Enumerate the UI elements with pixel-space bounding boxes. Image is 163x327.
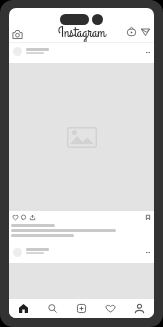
button[interactable]: Share <box>27 212 37 222</box>
button[interactable]: Profile <box>125 299 154 318</box>
button[interactable]: Save <box>143 212 153 222</box>
button[interactable]: Search <box>38 299 67 318</box>
staticText: Instagram <box>58 23 106 43</box>
button[interactable]: Create <box>67 299 96 318</box>
button[interactable]: Messages <box>138 24 152 38</box>
button[interactable]: More options <box>9 243 154 263</box>
button[interactable]: More options <box>9 43 154 63</box>
button[interactable]: Comment <box>18 212 28 222</box>
button[interactable]: More options <box>141 245 154 259</box>
button[interactable]: More options <box>141 45 154 59</box>
button[interactable]: Home <box>9 299 38 318</box>
button[interactable]: Activity <box>96 299 125 318</box>
button[interactable]: Like <box>10 212 20 222</box>
button[interactable]: IGTV <box>124 24 138 38</box>
button[interactable]: Camera <box>10 27 24 41</box>
